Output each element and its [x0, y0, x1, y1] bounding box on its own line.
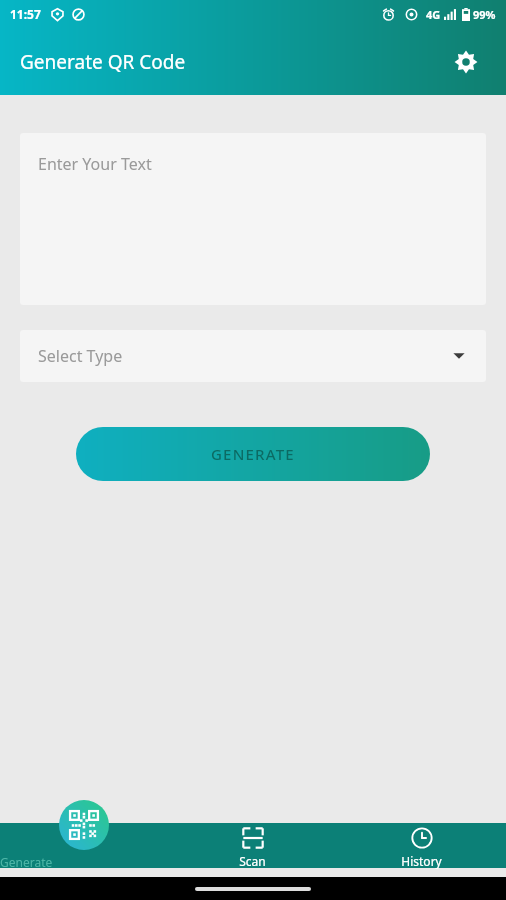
- button[interactable]: Scan: [168, 800, 337, 877]
- staticText: 99%: [473, 7, 496, 22]
- staticText: Generate: [0, 854, 168, 870]
- button[interactable]: Generate: [0, 800, 168, 877]
- staticText: 4G: [426, 7, 441, 22]
- staticText: History: [401, 853, 442, 869]
- staticText: Generate QR Code: [20, 49, 444, 75]
- staticText: Scan: [239, 853, 266, 869]
- button[interactable]: Select Type: [20, 330, 486, 382]
- button[interactable]: GENERATE: [76, 427, 430, 481]
- staticText: Select Type: [38, 345, 452, 367]
- staticText: Enter Your Text: [38, 153, 152, 175]
- staticText: GENERATE: [211, 444, 295, 464]
- button[interactable]: Settings: [444, 40, 488, 84]
- staticText: 11:57: [10, 6, 41, 22]
- button[interactable]: Enter Your Text: [20, 133, 486, 305]
- button[interactable]: History: [337, 800, 506, 877]
